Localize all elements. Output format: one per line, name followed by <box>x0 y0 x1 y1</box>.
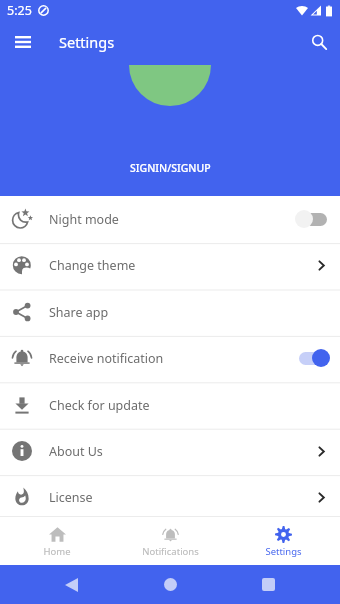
button[interactable]: Share app <box>0 289 340 335</box>
button[interactable]: License <box>0 474 340 520</box>
button[interactable]: Change theme <box>0 242 340 288</box>
staticText: Receive notification <box>49 350 164 367</box>
button[interactable]: Recent apps <box>248 565 288 604</box>
staticText: Home <box>43 545 71 558</box>
staticText: About Us <box>49 443 103 460</box>
button[interactable]: Home <box>150 565 190 604</box>
button[interactable]: About Us <box>0 428 340 474</box>
staticText: License <box>49 489 93 506</box>
button[interactable]: Settings <box>227 517 340 565</box>
staticText: Change theme <box>49 257 136 274</box>
staticText: 5:25 <box>7 2 32 19</box>
button[interactable]: Search <box>299 22 339 62</box>
button[interactable]: Check for update <box>0 382 340 428</box>
button[interactable]: Menu <box>5 24 41 60</box>
button[interactable]: Back <box>51 565 91 604</box>
staticText: Notifications <box>142 545 199 558</box>
staticText: Check for update <box>49 397 150 414</box>
staticText: Night mode <box>49 211 119 228</box>
staticText: Share app <box>49 304 109 321</box>
button[interactable]: Night mode <box>0 196 340 242</box>
staticText: Settings <box>265 545 302 558</box>
button[interactable]: Receive notification <box>0 335 340 381</box>
staticText: Settings <box>59 32 115 52</box>
button[interactable]: SIGNIN/SIGNUP <box>130 161 211 175</box>
button[interactable]: Home <box>0 517 114 565</box>
button[interactable]: Notifications <box>114 517 227 565</box>
